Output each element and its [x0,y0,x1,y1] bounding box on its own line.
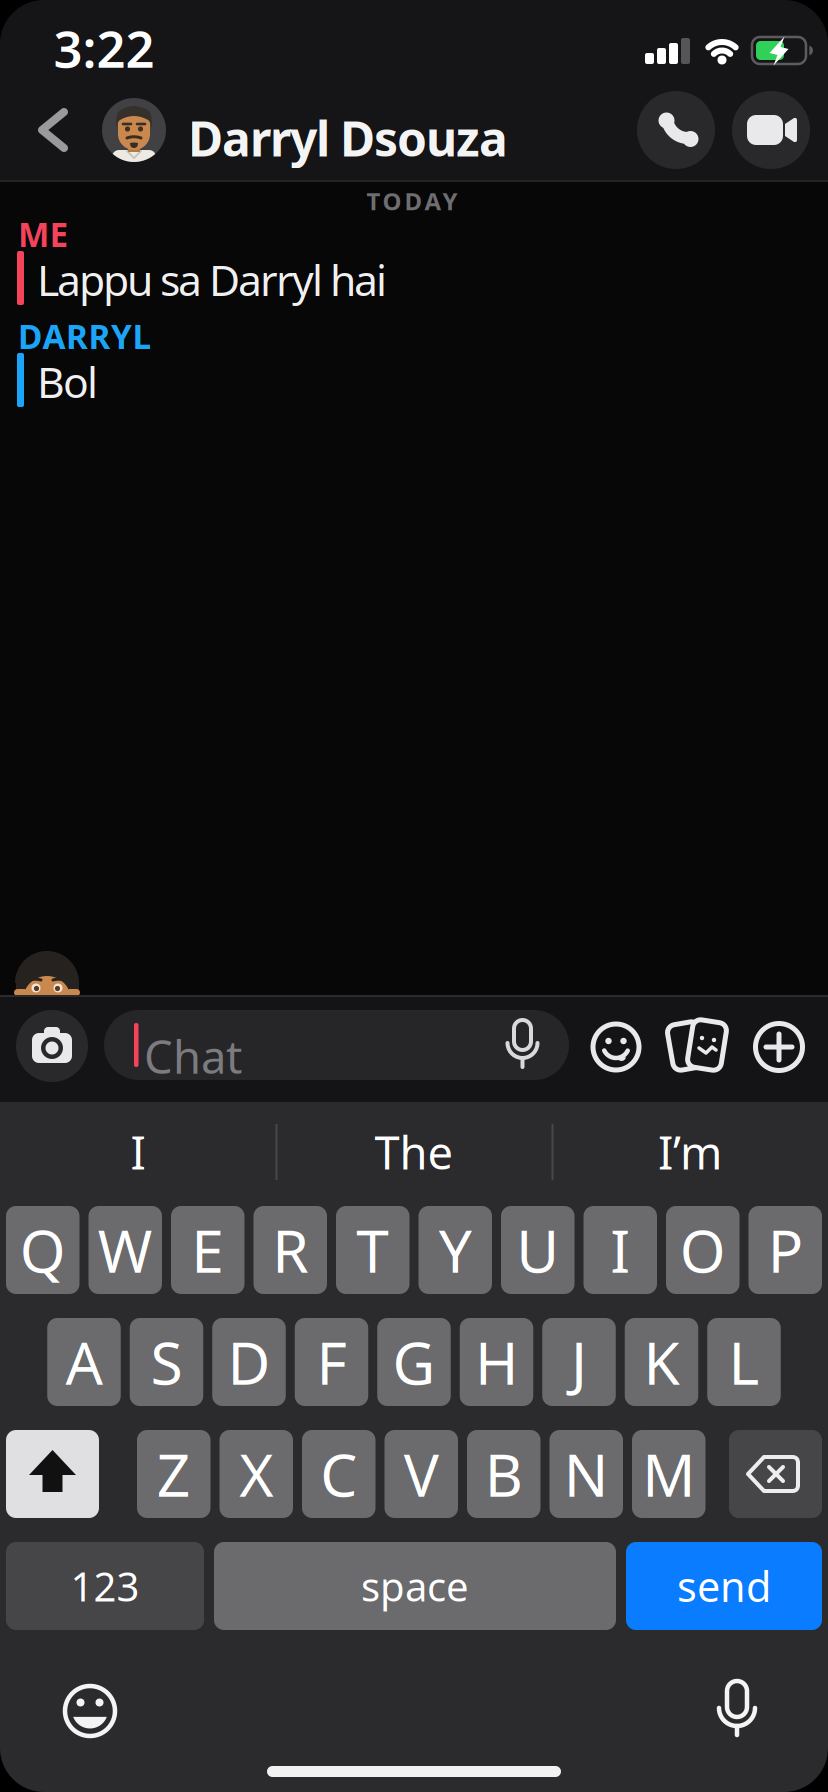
button[interactable] [708,1677,766,1739]
button[interactable] [732,91,810,169]
staticText: B [485,1435,523,1513]
staticText: Q [20,1211,66,1289]
button[interactable]: L [707,1318,781,1406]
staticText: D [227,1323,270,1401]
button[interactable]: M [632,1430,705,1518]
staticText: E [191,1211,224,1289]
staticText: Darryl Dsouza [188,106,508,170]
button[interactable]: I’m [555,1107,825,1197]
button[interactable]: D [212,1318,286,1406]
staticText: A [65,1323,102,1401]
staticText: T [356,1211,389,1289]
staticText: I [130,1122,145,1182]
button[interactable]: U [501,1206,574,1294]
button[interactable]: B [467,1430,540,1518]
staticText: V [404,1435,439,1513]
button[interactable] [16,1010,88,1082]
button[interactable]: A [47,1318,121,1406]
button[interactable] [102,98,166,162]
staticText: TODAY [366,185,457,217]
button[interactable]: Z [137,1430,210,1518]
staticText: Bol [37,353,98,410]
staticText: N [564,1435,609,1513]
staticText: send [677,1559,771,1613]
staticText: 3:22 [53,14,154,82]
staticText: I [610,1211,630,1289]
staticText: ME [18,212,68,256]
staticText: Z [157,1435,191,1513]
button[interactable] [637,91,715,169]
button[interactable]: O [666,1206,739,1294]
button[interactable]: Y [418,1206,492,1294]
button[interactable]: I [3,1107,273,1197]
button[interactable] [590,1021,642,1073]
button[interactable]: W [88,1206,162,1294]
button[interactable] [666,1016,728,1078]
button[interactable]: K [625,1318,698,1406]
staticText: I’m [658,1122,722,1182]
staticText: Lappu sa Darryl hai [37,251,387,308]
staticText: G [392,1323,435,1401]
staticText: K [643,1323,679,1401]
staticText: O [680,1211,726,1289]
staticText: M [642,1435,695,1513]
button[interactable]: R [253,1206,327,1294]
button[interactable] [62,1683,118,1739]
button[interactable]: Chat [104,1010,569,1080]
staticText: F [316,1323,346,1401]
button[interactable]: J [542,1318,616,1406]
button[interactable]: The [279,1107,549,1197]
staticText: H [475,1323,518,1401]
staticText: P [768,1211,803,1289]
button[interactable] [729,1430,822,1518]
staticText: R [272,1211,308,1289]
button[interactable]: F [295,1318,368,1406]
button[interactable] [23,95,83,165]
button[interactable]: send [626,1542,822,1630]
button[interactable]: X [219,1430,293,1518]
staticText: C [320,1435,357,1513]
button[interactable]: T [336,1206,409,1294]
button[interactable] [6,1430,99,1518]
button[interactable]: C [302,1430,375,1518]
staticText: The [374,1122,453,1182]
staticText: W [98,1211,153,1289]
staticText: J [571,1323,587,1401]
staticText: space [361,1559,469,1612]
button[interactable]: Q [6,1206,79,1294]
button[interactable]: P [748,1206,822,1294]
staticText: Chat [144,1026,242,1086]
staticText: X [239,1435,273,1513]
button[interactable]: I [583,1206,657,1294]
staticText: S [150,1323,182,1401]
button[interactable] [753,1021,805,1073]
button[interactable]: H [460,1318,533,1406]
button[interactable]: E [171,1206,244,1294]
button[interactable]: space [214,1542,616,1630]
button[interactable]: G [377,1318,451,1406]
staticText: Y [439,1211,472,1289]
button[interactable]: S [130,1318,203,1406]
staticText: L [728,1323,759,1401]
staticText: DARRYL [18,314,151,358]
button[interactable]: 123 [6,1542,204,1630]
staticText: 123 [70,1559,139,1612]
button[interactable]: N [549,1430,623,1518]
button[interactable]: V [384,1430,458,1518]
staticText: U [516,1211,559,1289]
